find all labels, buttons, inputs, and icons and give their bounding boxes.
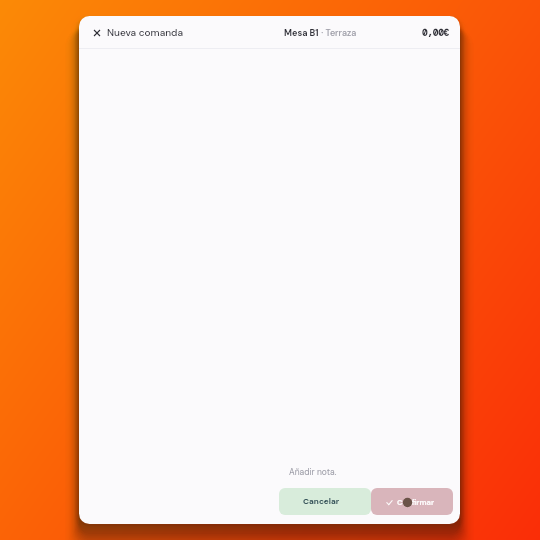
- staticText: Cancelar: [303, 496, 340, 507]
- staticText: Mesa B1: [284, 27, 319, 39]
- button[interactable]: Cerrar: [87, 23, 106, 42]
- staticText: 0,00€: [422, 27, 450, 39]
- staticText: Confirmar: [397, 498, 434, 508]
- staticText: Nueva comanda: [107, 26, 184, 39]
- button[interactable]: Mesa B1: [284, 24, 357, 41]
- button[interactable]: Confirmar: [371, 488, 453, 515]
- staticText: · Terraza: [319, 27, 357, 39]
- button[interactable]: Cancelar: [279, 488, 371, 515]
- staticText: Añadir nota.: [289, 467, 337, 478]
- button[interactable]: Añadir nota.: [289, 463, 457, 482]
